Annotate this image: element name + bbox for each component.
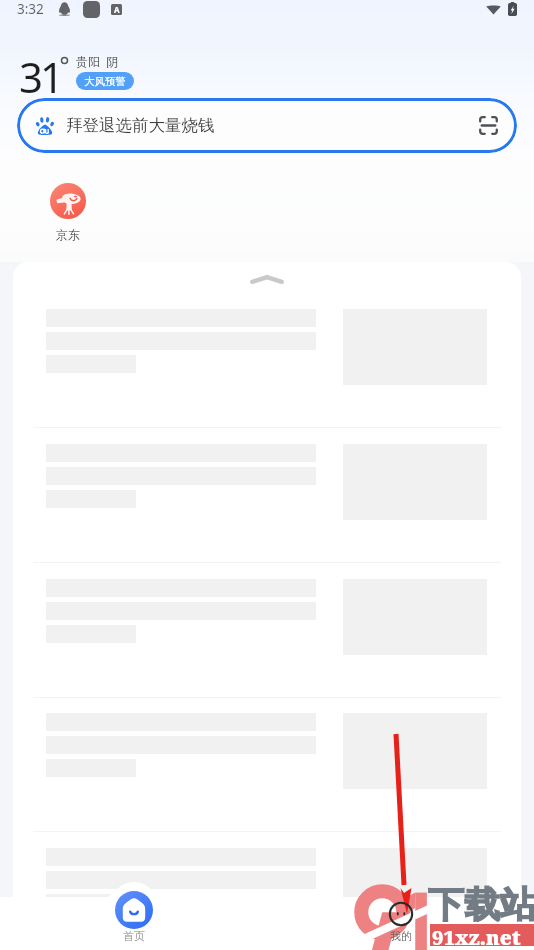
button[interactable] xyxy=(13,579,521,713)
staticText: 我的 xyxy=(390,929,412,943)
button[interactable]: 京东 xyxy=(40,183,95,242)
staticText: 首页 xyxy=(123,929,145,943)
button[interactable]: 大风预警 xyxy=(76,72,134,90)
staticText: 91xz.net xyxy=(432,924,521,946)
staticText: A xyxy=(114,4,120,15)
staticText: 下载站 xyxy=(428,882,534,927)
staticText: 大风预警 xyxy=(84,75,126,88)
button[interactable]: 拜登退选前大量烧钱 xyxy=(17,98,517,153)
staticText: 3:32 xyxy=(17,0,44,18)
other: Scan code xyxy=(479,116,498,135)
other: Mine xyxy=(388,901,414,927)
staticText: 拜登退选前大量烧钱 xyxy=(66,115,215,136)
button[interactable] xyxy=(13,848,521,950)
staticText: 31 xyxy=(19,48,62,105)
button[interactable]: 首页 xyxy=(99,891,169,943)
button[interactable] xyxy=(13,444,521,578)
button[interactable] xyxy=(13,713,521,847)
button[interactable]: Collapse xyxy=(241,267,293,291)
staticText: 京东 xyxy=(56,227,80,242)
button[interactable] xyxy=(13,309,521,443)
button[interactable]: Mine xyxy=(366,901,436,943)
staticText: 贵阳 阴 xyxy=(76,53,119,69)
